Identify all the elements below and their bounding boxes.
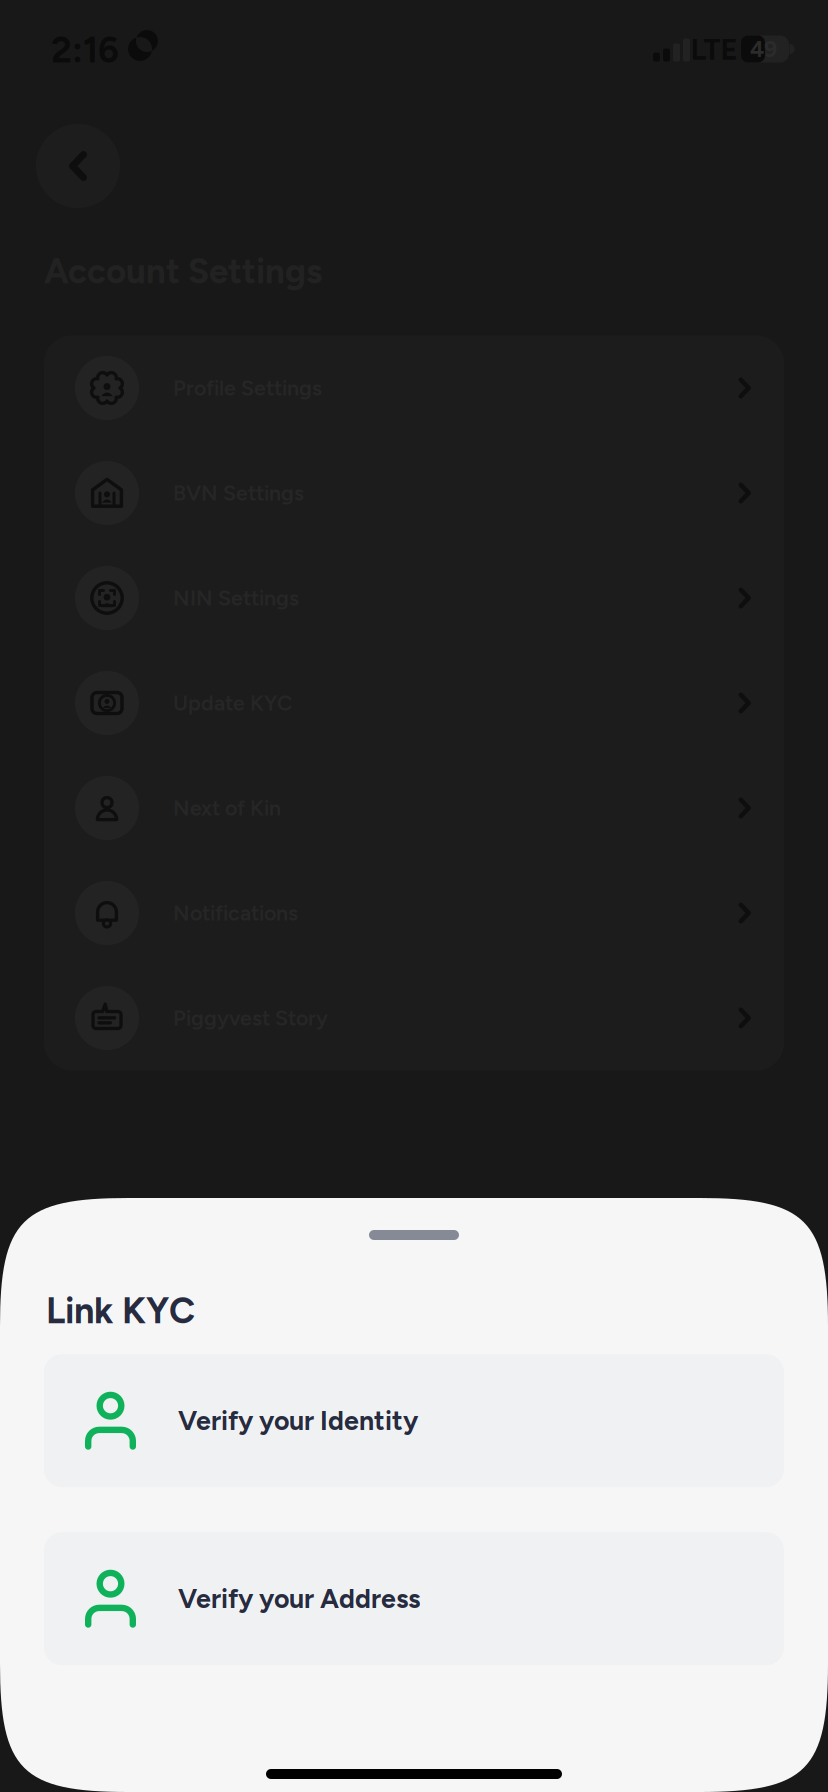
staticText: Notifications bbox=[173, 900, 298, 926]
staticText: Profile Settings bbox=[173, 375, 322, 401]
button[interactable]: Verify your Address bbox=[44, 1532, 784, 1665]
staticText: Verify your Identity bbox=[178, 1405, 418, 1437]
button[interactable]: Verify your Identity bbox=[44, 1354, 784, 1487]
staticText: BVN Settings bbox=[173, 480, 304, 506]
staticText: Verify your Address bbox=[178, 1583, 420, 1615]
staticText: Piggyvest Story bbox=[173, 1005, 328, 1031]
staticText: 2:16 bbox=[51, 28, 119, 72]
staticText: 49 bbox=[750, 35, 777, 63]
button[interactable]: Back bbox=[36, 124, 120, 208]
staticText: Link KYC bbox=[46, 1289, 195, 1332]
staticText: Next of Kin bbox=[173, 795, 281, 821]
staticText: LTE bbox=[690, 32, 737, 67]
staticText: Update KYC bbox=[173, 690, 292, 716]
staticText: Account Settings bbox=[44, 250, 322, 292]
staticText: NIN Settings bbox=[173, 585, 299, 611]
